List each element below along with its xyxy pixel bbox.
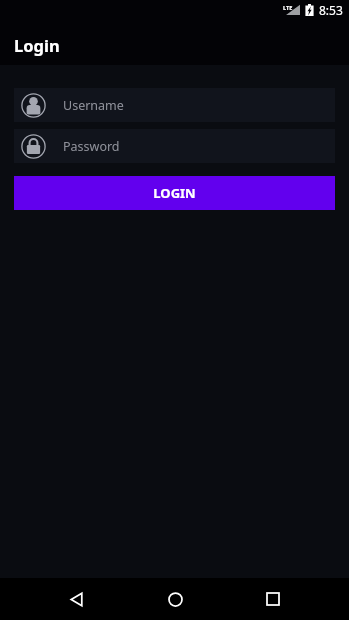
staticText: Login: [14, 34, 60, 56]
staticText: LTE: [283, 4, 293, 12]
button[interactable]: Recent apps: [253, 579, 293, 619]
button[interactable]: LOGIN: [14, 176, 335, 210]
staticText: LOGIN: [153, 184, 196, 202]
button[interactable]: Back: [56, 579, 96, 619]
button[interactable]: Username: [14, 88, 335, 122]
button[interactable]: Home: [155, 579, 195, 619]
staticText: 8:53: [319, 2, 343, 18]
staticText: Password: [63, 138, 120, 155]
staticText: Username: [63, 97, 124, 114]
button[interactable]: Password: [14, 129, 335, 163]
